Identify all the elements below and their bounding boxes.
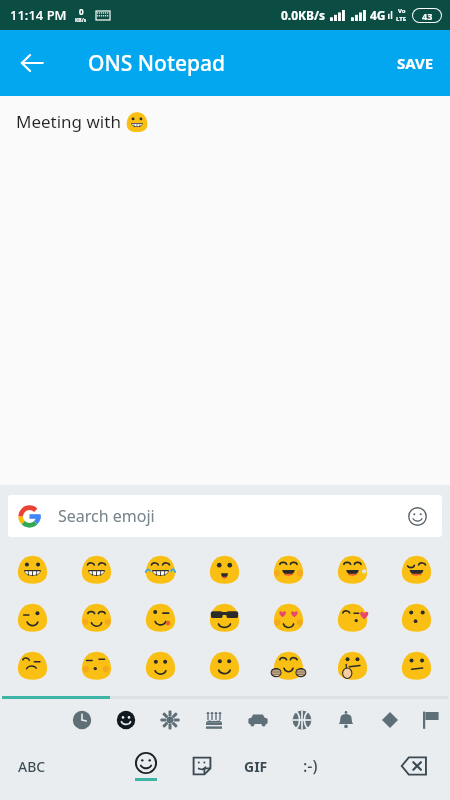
button[interactable]: Back xyxy=(8,39,56,87)
staticText: Meeting with xyxy=(16,110,126,133)
staticText: :-) xyxy=(303,755,318,777)
button[interactable]: Category 2 xyxy=(148,699,192,741)
button[interactable]: Emoji 17 xyxy=(192,641,256,689)
button[interactable]: Emoji 11 xyxy=(256,593,320,641)
staticText: KB/s xyxy=(75,17,87,24)
button[interactable]: Category 4 xyxy=(236,699,280,741)
button[interactable]: Emoji 14 xyxy=(0,641,64,689)
button[interactable]: Emoji 6 xyxy=(384,545,448,593)
button[interactable]: Backspace xyxy=(392,743,436,789)
staticText: 43 xyxy=(422,10,433,22)
button[interactable]: ABC xyxy=(8,743,56,789)
staticText: 11:14 PM xyxy=(10,6,67,24)
staticText: GIF xyxy=(244,757,268,776)
button[interactable]: Emoji 5 xyxy=(320,545,384,593)
staticText: Vo xyxy=(398,7,406,15)
button[interactable]: GIF xyxy=(234,743,278,789)
button[interactable]: Category 0 xyxy=(60,699,104,741)
button[interactable]: Emoji 0 xyxy=(0,545,64,593)
button[interactable]: Category 5 xyxy=(280,699,324,741)
staticText: 0 xyxy=(79,6,84,17)
button[interactable]: Emoji 13 xyxy=(384,593,448,641)
staticText: 4G xyxy=(370,7,386,23)
button[interactable]: Emoji 9 xyxy=(128,593,192,641)
button[interactable]: Stickers xyxy=(182,743,222,789)
button[interactable]: Category 8 xyxy=(412,699,450,741)
staticText: Search emoji xyxy=(58,505,155,527)
button[interactable]: Search emoji xyxy=(8,495,442,537)
staticText: ONS Notepad xyxy=(88,49,226,78)
button[interactable]: Category 3 xyxy=(192,699,236,741)
button[interactable]: Emoji 4 xyxy=(256,545,320,593)
button[interactable]: Emoji 2 xyxy=(128,545,192,593)
button[interactable]: Emoji 8 xyxy=(64,593,128,641)
button[interactable]: Category 6 xyxy=(324,699,368,741)
button[interactable]: Emoji 19 xyxy=(320,641,384,689)
button[interactable]: Emoji 15 xyxy=(64,641,128,689)
button[interactable]: Emoji xyxy=(124,743,168,789)
button[interactable]: Emoji 1 xyxy=(64,545,128,593)
staticText: SAVE xyxy=(397,53,434,73)
staticText: LTE xyxy=(396,15,407,23)
button[interactable]: Emoji keyboard xyxy=(402,501,432,531)
button[interactable]: Emoji 12 xyxy=(320,593,384,641)
button[interactable]: Emoji 20 xyxy=(384,641,448,689)
button[interactable]: Emoji 7 xyxy=(0,593,64,641)
button[interactable]: Emoji 16 xyxy=(128,641,192,689)
button[interactable]: Emoji 10 xyxy=(192,593,256,641)
staticText: ABC xyxy=(18,757,46,776)
button[interactable]: Emoticons xyxy=(288,743,332,789)
button[interactable]: Meeting with xyxy=(0,96,450,485)
button[interactable]: Emoji 18 xyxy=(256,641,320,689)
button[interactable]: SAVE xyxy=(381,30,450,96)
button[interactable]: Emoji 3 xyxy=(192,545,256,593)
button[interactable]: Category 7 xyxy=(368,699,412,741)
staticText: 0.0KB/s xyxy=(281,7,326,23)
button[interactable]: Category 1 xyxy=(104,699,148,741)
